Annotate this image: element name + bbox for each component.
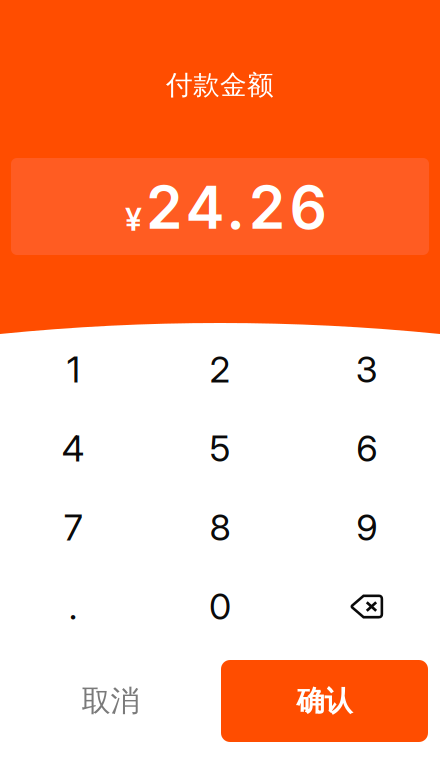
staticText: 1 — [67, 348, 80, 391]
staticText: 24.26 — [146, 172, 327, 243]
staticText: 付款金额 — [166, 69, 274, 101]
staticText: 确认 — [296, 684, 352, 718]
staticText: 9 — [356, 506, 377, 549]
button[interactable]: Delete — [293, 567, 440, 646]
button[interactable]: 5 — [147, 409, 293, 488]
staticText: . — [69, 585, 78, 628]
staticText: 6 — [356, 427, 377, 470]
button[interactable]: 7 — [0, 488, 147, 567]
staticText: 8 — [209, 506, 230, 549]
staticText: 7 — [64, 506, 83, 549]
staticText: ¥ — [125, 201, 142, 238]
button[interactable]: 4 — [0, 409, 147, 488]
staticText: 3 — [356, 348, 378, 391]
button[interactable]: 1 — [0, 330, 147, 409]
button[interactable]: 取消 — [7, 660, 214, 742]
staticText: 0 — [209, 585, 231, 628]
button[interactable]: 8 — [147, 488, 293, 567]
button[interactable]: 确认 — [221, 660, 428, 742]
staticText: 5 — [209, 427, 230, 470]
staticText: 2 — [209, 348, 230, 391]
button[interactable]: 3 — [293, 330, 440, 409]
staticText: 4 — [62, 427, 85, 470]
button[interactable]: 9 — [293, 488, 440, 567]
button[interactable]: 6 — [293, 409, 440, 488]
button[interactable]: 0 — [147, 567, 293, 646]
staticText: 取消 — [81, 683, 139, 719]
button[interactable]: . — [0, 567, 147, 646]
button[interactable]: 2 — [147, 330, 293, 409]
